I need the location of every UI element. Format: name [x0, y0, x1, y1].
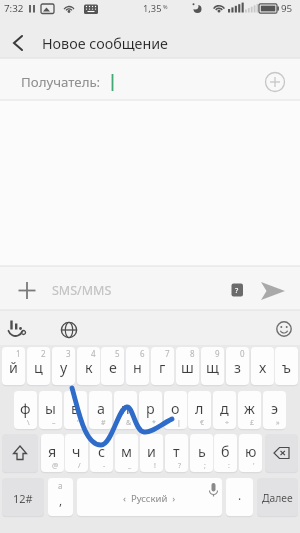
staticText: л: [195, 399, 204, 418]
button[interactable]: б: [214, 434, 237, 472]
staticText: %: [163, 3, 168, 10]
staticText: 0: [240, 348, 245, 359]
staticText: м: [121, 442, 132, 461]
button[interactable]: ь: [190, 434, 213, 472]
button[interactable]: [2, 434, 38, 472]
staticText: н: [133, 358, 142, 377]
staticText: ы: [45, 399, 56, 418]
button[interactable]: а: [48, 478, 73, 516]
button[interactable]: Далее: [257, 478, 298, 516]
staticText: к: [85, 358, 93, 377]
button[interactable]: [55, 314, 83, 342]
staticText: £: [250, 418, 255, 428]
button[interactable]: ъ: [275, 347, 298, 385]
button[interactable]: 7: [151, 347, 174, 385]
button[interactable]: ч: [65, 434, 88, 472]
staticText: д: [220, 399, 229, 418]
staticText: 4: [91, 348, 96, 359]
button[interactable]: ю: [239, 434, 262, 472]
button[interactable]: м: [115, 434, 138, 472]
staticText: 9: [215, 348, 220, 359]
staticText: 12#: [13, 491, 33, 506]
button[interactable]: э: [263, 391, 286, 429]
button[interactable]: л: [188, 391, 211, 429]
staticText: 1: [16, 348, 21, 359]
staticText: ‹ Русский ›: [123, 492, 176, 505]
button[interactable]: о: [164, 391, 187, 429]
button[interactable]: 6: [126, 347, 149, 385]
button[interactable]: р: [139, 391, 162, 429]
staticText: и: [147, 442, 156, 461]
button[interactable]: ж: [238, 391, 261, 429]
staticText: с: [98, 442, 106, 461]
button[interactable]: 4: [77, 347, 100, 385]
staticText: ч: [72, 442, 81, 461]
staticText: 8: [190, 348, 195, 359]
button[interactable]: ф: [14, 391, 37, 429]
staticText: ;: [204, 461, 206, 471]
staticText: ш: [181, 358, 194, 377]
staticText: /: [78, 461, 81, 471]
staticText: @: [52, 461, 59, 471]
staticText: SMS/MMS: [52, 282, 112, 299]
staticText: б: [221, 442, 230, 461]
staticText: р: [146, 399, 155, 418]
staticText: Получатель:: [21, 73, 101, 91]
button[interactable]: [270, 314, 298, 342]
staticText: о: [171, 399, 180, 418]
button[interactable]: и: [140, 434, 163, 472]
button[interactable]: [265, 72, 286, 93]
staticText: 1,35: [143, 2, 162, 15]
staticText: \: [27, 418, 30, 428]
staticText: »: [276, 418, 280, 428]
staticText: 5: [115, 348, 120, 359]
button[interactable]: [6, 31, 30, 55]
staticText: в: [71, 399, 80, 418]
staticText: #: [101, 418, 106, 428]
staticText: з: [234, 358, 241, 377]
button[interactable]: в: [64, 391, 87, 429]
button[interactable]: д: [213, 391, 236, 429]
button[interactable]: 8: [176, 347, 199, 385]
button[interactable]: [0, 266, 300, 310]
button[interactable]: [265, 434, 298, 472]
staticText: а: [58, 480, 63, 491]
button[interactable]: п: [114, 391, 137, 429]
staticText: ÷: [225, 418, 230, 428]
button[interactable]: х: [251, 347, 274, 385]
button[interactable]: [12, 276, 42, 306]
staticText: ф: [20, 399, 31, 418]
button[interactable]: 5: [101, 347, 124, 385]
button[interactable]: 3: [52, 347, 75, 385]
button[interactable]: 1: [2, 347, 25, 385]
staticText: !: [154, 461, 156, 471]
staticText: |: [177, 418, 181, 428]
staticText: €: [200, 418, 205, 428]
button[interactable]: т: [165, 434, 188, 472]
staticText: 7:32: [4, 2, 24, 15]
staticText: _: [128, 461, 132, 471]
button[interactable]: .: [226, 478, 253, 516]
staticText: 2: [41, 348, 46, 359]
button[interactable]: [256, 276, 290, 306]
button[interactable]: ‹ Русский ›: [77, 478, 222, 516]
button[interactable]: 2: [27, 347, 50, 385]
staticText: щ: [206, 358, 219, 377]
button[interactable]: 9: [201, 347, 224, 385]
staticText: :: [228, 461, 230, 471]
staticText: х: [259, 358, 267, 377]
button[interactable]: 0: [226, 347, 249, 385]
staticText: Далее: [262, 491, 293, 505]
staticText: ': [253, 461, 255, 471]
button[interactable]: ы: [39, 391, 62, 429]
staticText: ь: [198, 442, 206, 461]
staticText: я: [48, 442, 57, 461]
staticText: т: [173, 442, 180, 461]
button[interactable]: 12#: [2, 478, 44, 516]
button[interactable]: [0, 58, 300, 100]
button[interactable]: а: [89, 391, 112, 429]
button[interactable]: [2, 314, 30, 342]
button[interactable]: я: [41, 434, 64, 472]
staticText: ю: [245, 442, 257, 461]
button[interactable]: с: [90, 434, 113, 472]
